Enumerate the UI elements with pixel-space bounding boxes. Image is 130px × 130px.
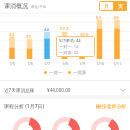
staticText: 43 <box>9 32 14 38</box>
staticText: 天 <box>118 3 123 9</box>
other: Expand <box>120 87 126 93</box>
staticText: 32 <box>26 34 31 40</box>
staticText: 1/8 <box>62 61 69 66</box>
button[interactable]: 按老师分析 <box>96 103 126 109</box>
button[interactable]: 天 <box>113 1 127 11</box>
staticText: 课消概况 <box>4 2 28 10</box>
staticText: 一对多: 32 <box>59 50 79 55</box>
staticText: 1/5 <box>9 61 16 66</box>
staticText: 课程分析 (1月7日) <box>4 103 45 110</box>
staticText: 按老师分析 <box>102 103 126 109</box>
staticText: 1/11 <box>113 61 122 66</box>
staticText: 一对多 <box>73 70 87 76</box>
staticText: 30.5 <box>80 32 89 38</box>
staticText: 44 <box>44 27 49 33</box>
staticText: 一对一: 12 <box>59 44 79 50</box>
staticText: 5/7课消: 44 <box>59 38 81 44</box>
staticText: 1/9 <box>79 61 86 66</box>
staticText: 近7天课消总额 <box>4 87 35 93</box>
staticText: 65 <box>114 15 119 21</box>
staticText: 单位:千元 <box>31 4 47 9</box>
staticText: 1/7 <box>44 61 51 66</box>
staticText: 57.2 <box>60 26 69 32</box>
staticText: 1/6 <box>27 61 34 66</box>
staticText: 1/10 <box>96 61 105 66</box>
staticText: 一对一 <box>49 70 63 76</box>
button[interactable]: 月 <box>99 1 113 11</box>
staticText: 62 <box>96 15 101 21</box>
staticText: 月 <box>104 3 109 9</box>
button[interactable]: 近7天课消总额 <box>4 83 126 96</box>
staticText: ¥44,000.00 <box>47 87 71 93</box>
